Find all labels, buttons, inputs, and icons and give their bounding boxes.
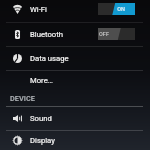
- staticText: ON: [117, 6, 125, 12]
- staticText: Display: [30, 136, 55, 145]
- staticText: DEVICE: [10, 94, 35, 103]
- button[interactable]: Data usage: [0, 46, 150, 70]
- staticText: OFF: [99, 31, 109, 37]
- staticText: Sound: [30, 114, 52, 123]
- button[interactable]: Switch on: [98, 3, 135, 15]
- button[interactable]: Wi-Fi: [0, 0, 150, 20]
- button[interactable]: More…: [0, 70, 150, 90]
- button[interactable]: Display: [0, 130, 150, 150]
- button[interactable]: Switch off: [98, 28, 135, 40]
- button[interactable]: Bluetooth: [0, 22, 150, 46]
- staticText: Wi-Fi: [30, 5, 47, 14]
- staticText: Bluetooth: [30, 30, 63, 39]
- staticText: More…: [30, 76, 53, 85]
- button[interactable]: Sound: [0, 106, 150, 130]
- staticText: Data usage: [30, 54, 69, 63]
